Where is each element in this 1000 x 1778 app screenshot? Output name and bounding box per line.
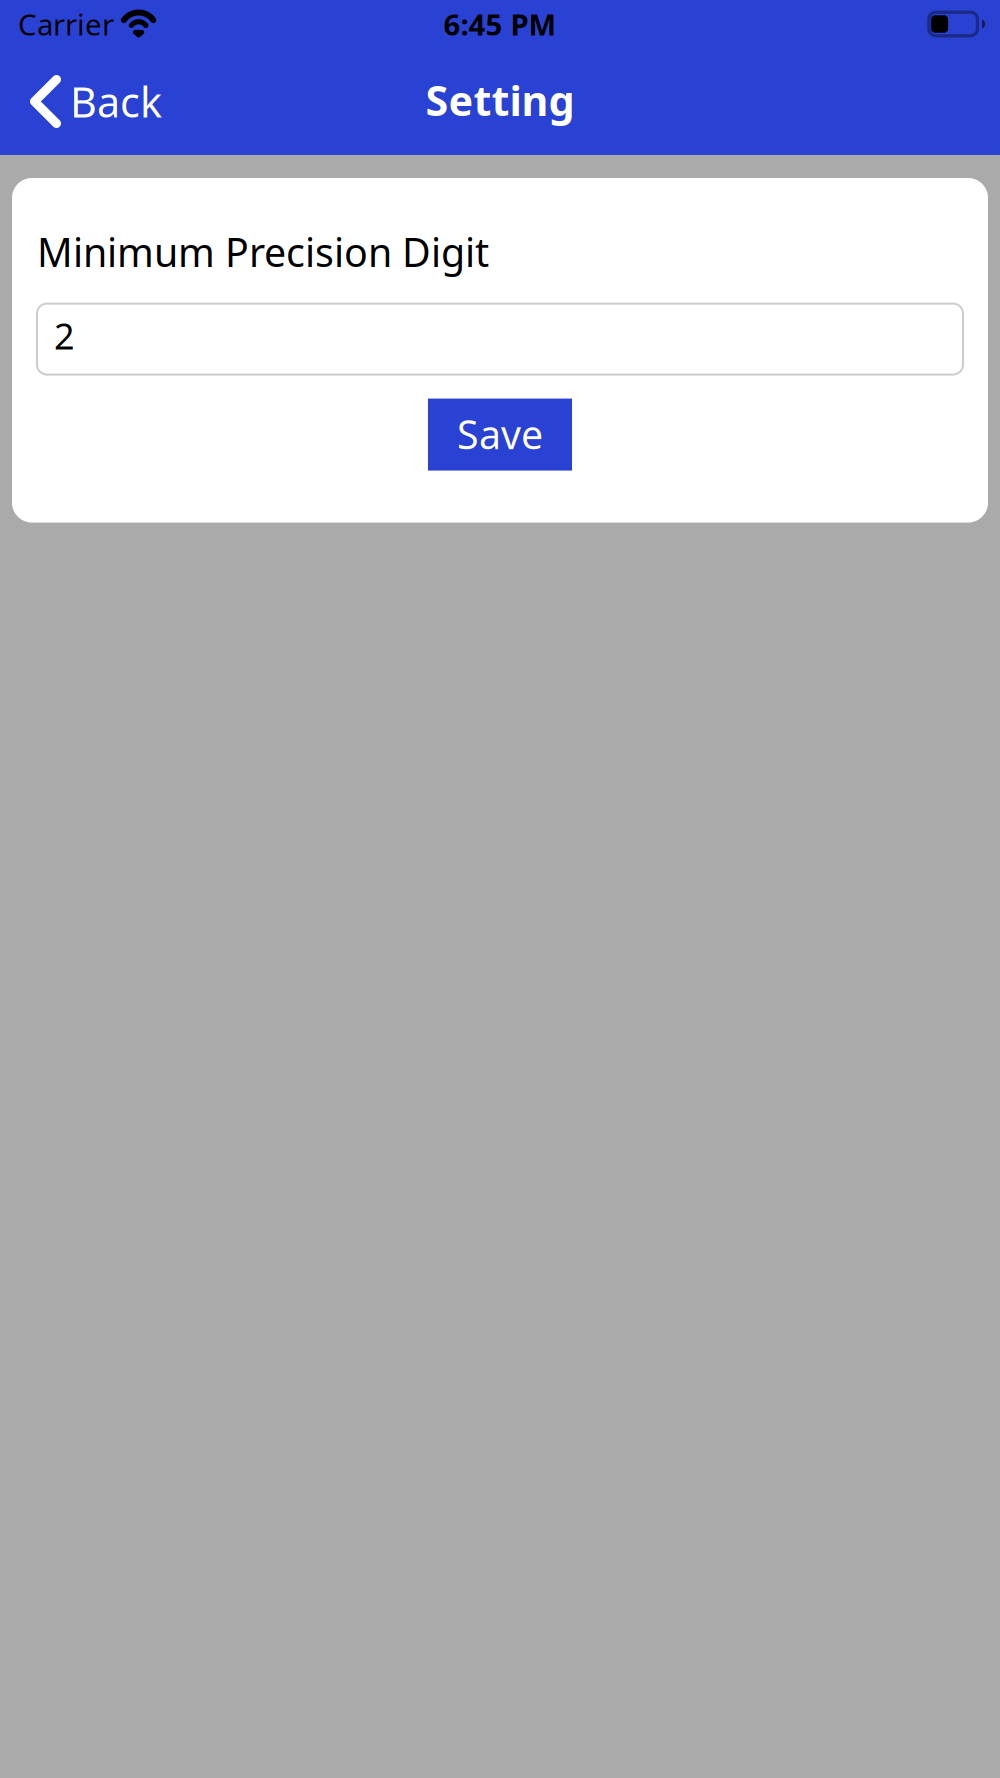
staticText: Minimum Precision Digit <box>37 225 489 279</box>
staticText: Back <box>70 73 162 130</box>
button[interactable]: 2 <box>37 304 963 375</box>
staticText: Setting <box>425 72 574 128</box>
button[interactable]: Back <box>0 60 176 146</box>
staticText: Save <box>457 407 543 461</box>
staticText: Carrier <box>18 4 114 44</box>
staticText: 6:45 PM <box>443 4 556 44</box>
staticText: 2 <box>54 311 75 360</box>
button[interactable]: Save <box>428 399 572 471</box>
